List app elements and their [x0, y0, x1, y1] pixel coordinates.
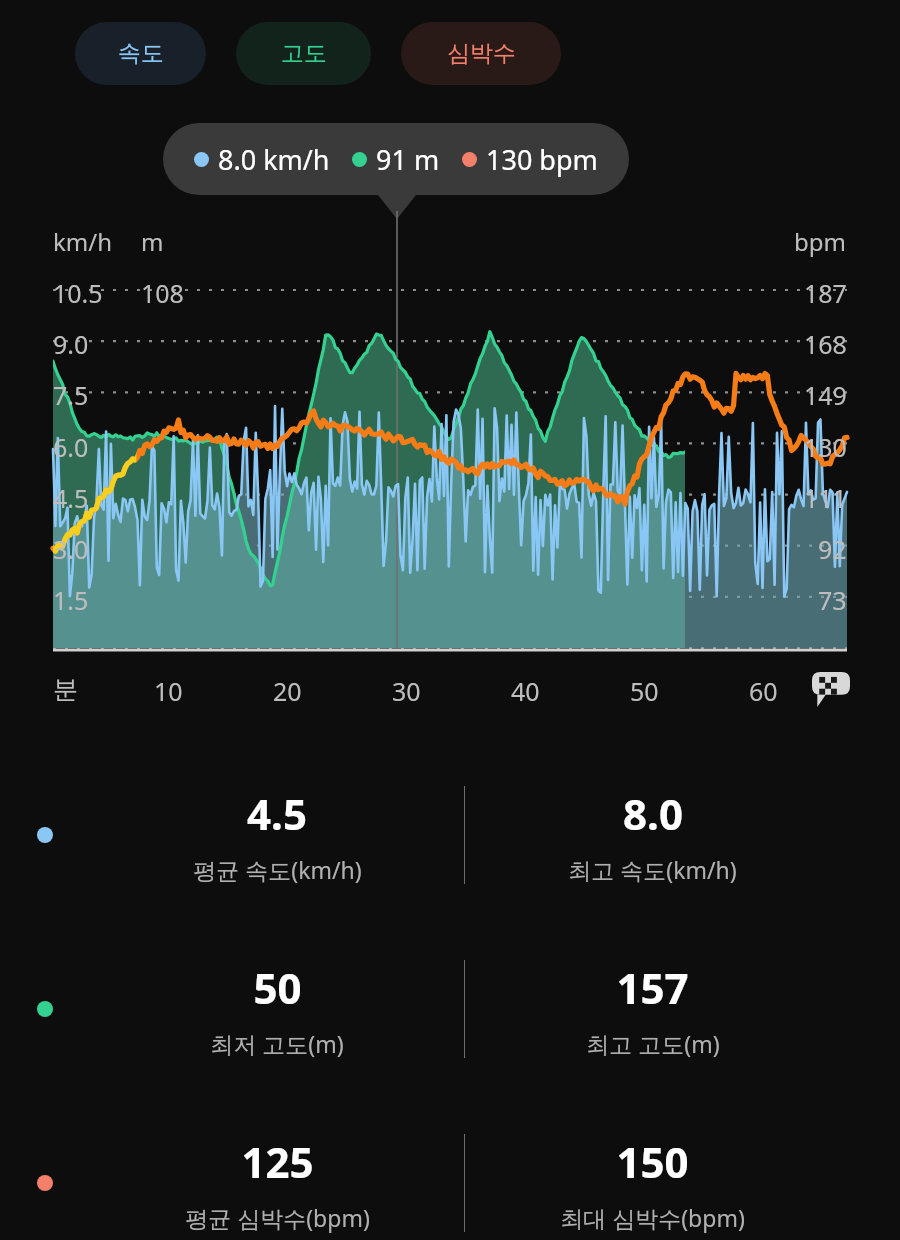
staticText: 10: [154, 674, 183, 708]
staticText: 157: [616, 959, 689, 1016]
button[interactable]: 8.0 km/h: [163, 123, 629, 195]
staticText: m: [141, 225, 164, 258]
staticText: 149: [804, 378, 847, 412]
staticText: bpm: [794, 225, 846, 258]
staticText: 최고 속도(km/h): [568, 854, 737, 885]
staticText: 평균 속도(km/h): [193, 854, 362, 885]
staticText: km/h: [53, 225, 113, 258]
button[interactable]: 고도: [236, 22, 371, 85]
button[interactable]: Finish: [812, 672, 850, 710]
staticText: 91 m: [376, 141, 440, 178]
staticText: 10.5: [53, 276, 103, 310]
staticText: 7.5: [53, 378, 89, 412]
staticText: 심박수: [447, 39, 516, 68]
staticText: 최고 고도(m): [586, 1028, 720, 1059]
staticText: 분: [53, 674, 78, 705]
staticText: 60: [749, 674, 778, 708]
staticText: 187: [804, 276, 847, 310]
button[interactable]: 심박수: [401, 22, 561, 85]
staticText: 8.0 km/h: [218, 141, 330, 178]
button[interactable]: 속도: [75, 22, 206, 85]
staticText: 30: [392, 674, 421, 708]
staticText: 130: [804, 430, 847, 464]
staticText: 속도: [118, 39, 164, 68]
staticText: 150: [616, 1133, 689, 1190]
staticText: 6.0: [53, 430, 89, 464]
staticText: 50: [253, 959, 302, 1016]
staticText: 168: [804, 327, 847, 361]
staticText: 130 bpm: [486, 141, 598, 178]
staticText: 4.5: [247, 785, 307, 842]
staticText: 평균 심박수(bpm): [185, 1202, 370, 1233]
staticText: 20: [273, 674, 302, 708]
staticText: 4.5: [53, 481, 89, 515]
staticText: 최저 고도(m): [210, 1028, 344, 1059]
staticText: 73: [818, 583, 847, 617]
staticText: 8.0: [623, 785, 683, 842]
staticText: 40: [511, 674, 540, 708]
staticText: 50: [630, 674, 659, 708]
staticText: 92: [818, 532, 847, 566]
staticText: 1.5: [53, 583, 89, 617]
staticText: 3.0: [53, 532, 89, 566]
staticText: 최대 심박수(bpm): [560, 1202, 745, 1233]
staticText: 고도: [281, 39, 327, 68]
staticText: 111: [804, 481, 847, 515]
staticText: 9.0: [53, 327, 89, 361]
staticText: 108: [141, 276, 184, 310]
staticText: 125: [241, 1133, 314, 1190]
